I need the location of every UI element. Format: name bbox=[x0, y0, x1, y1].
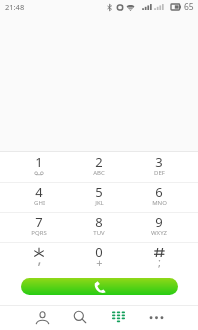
staticText: ABC bbox=[93, 169, 105, 177]
button[interactable]: 7 bbox=[9, 212, 69, 242]
button[interactable]: Search bbox=[61, 306, 99, 328]
button[interactable]: 8 bbox=[69, 212, 129, 242]
button[interactable]: 6 bbox=[129, 182, 189, 212]
staticText: 6 bbox=[155, 183, 163, 201]
staticText: JKL bbox=[95, 199, 104, 207]
button[interactable]: 5 bbox=[69, 182, 129, 212]
staticText: 7 bbox=[35, 213, 43, 231]
button[interactable]: 0 bbox=[69, 242, 129, 272]
staticText: 8 bbox=[95, 213, 103, 231]
button[interactable]: More options bbox=[137, 306, 175, 328]
staticText: TUV bbox=[93, 229, 105, 237]
staticText: 2 bbox=[95, 153, 103, 171]
staticText: 65 bbox=[184, 1, 194, 13]
button[interactable]: ; bbox=[129, 242, 189, 272]
button[interactable]: Call bbox=[21, 278, 178, 295]
staticText: 3 bbox=[155, 153, 163, 171]
staticText: + bbox=[96, 255, 103, 270]
staticText: ; bbox=[158, 254, 161, 269]
staticText: 21:48 bbox=[5, 2, 25, 12]
button[interactable]: , bbox=[9, 242, 69, 272]
button[interactable]: 4 bbox=[9, 182, 69, 212]
button[interactable]: Contacts bbox=[23, 306, 61, 328]
button[interactable]: 2 bbox=[69, 152, 129, 182]
button[interactable]: Dialpad bbox=[99, 306, 137, 328]
staticText: 0 bbox=[95, 243, 103, 261]
staticText: WXYZ bbox=[151, 229, 167, 237]
staticText: 5 bbox=[95, 183, 103, 201]
button[interactable]: 3 bbox=[129, 152, 189, 182]
staticText: DEF bbox=[154, 169, 165, 177]
staticText: , bbox=[37, 248, 42, 268]
button[interactable]: 9 bbox=[129, 212, 189, 242]
staticText: 9 bbox=[155, 213, 163, 231]
button[interactable]: 1 bbox=[9, 152, 69, 182]
staticText: PQRS bbox=[31, 229, 47, 237]
staticText: 4 bbox=[35, 183, 43, 201]
staticText: GHI bbox=[34, 199, 45, 207]
staticText: 1 bbox=[35, 153, 43, 171]
staticText: MNO bbox=[152, 199, 167, 207]
